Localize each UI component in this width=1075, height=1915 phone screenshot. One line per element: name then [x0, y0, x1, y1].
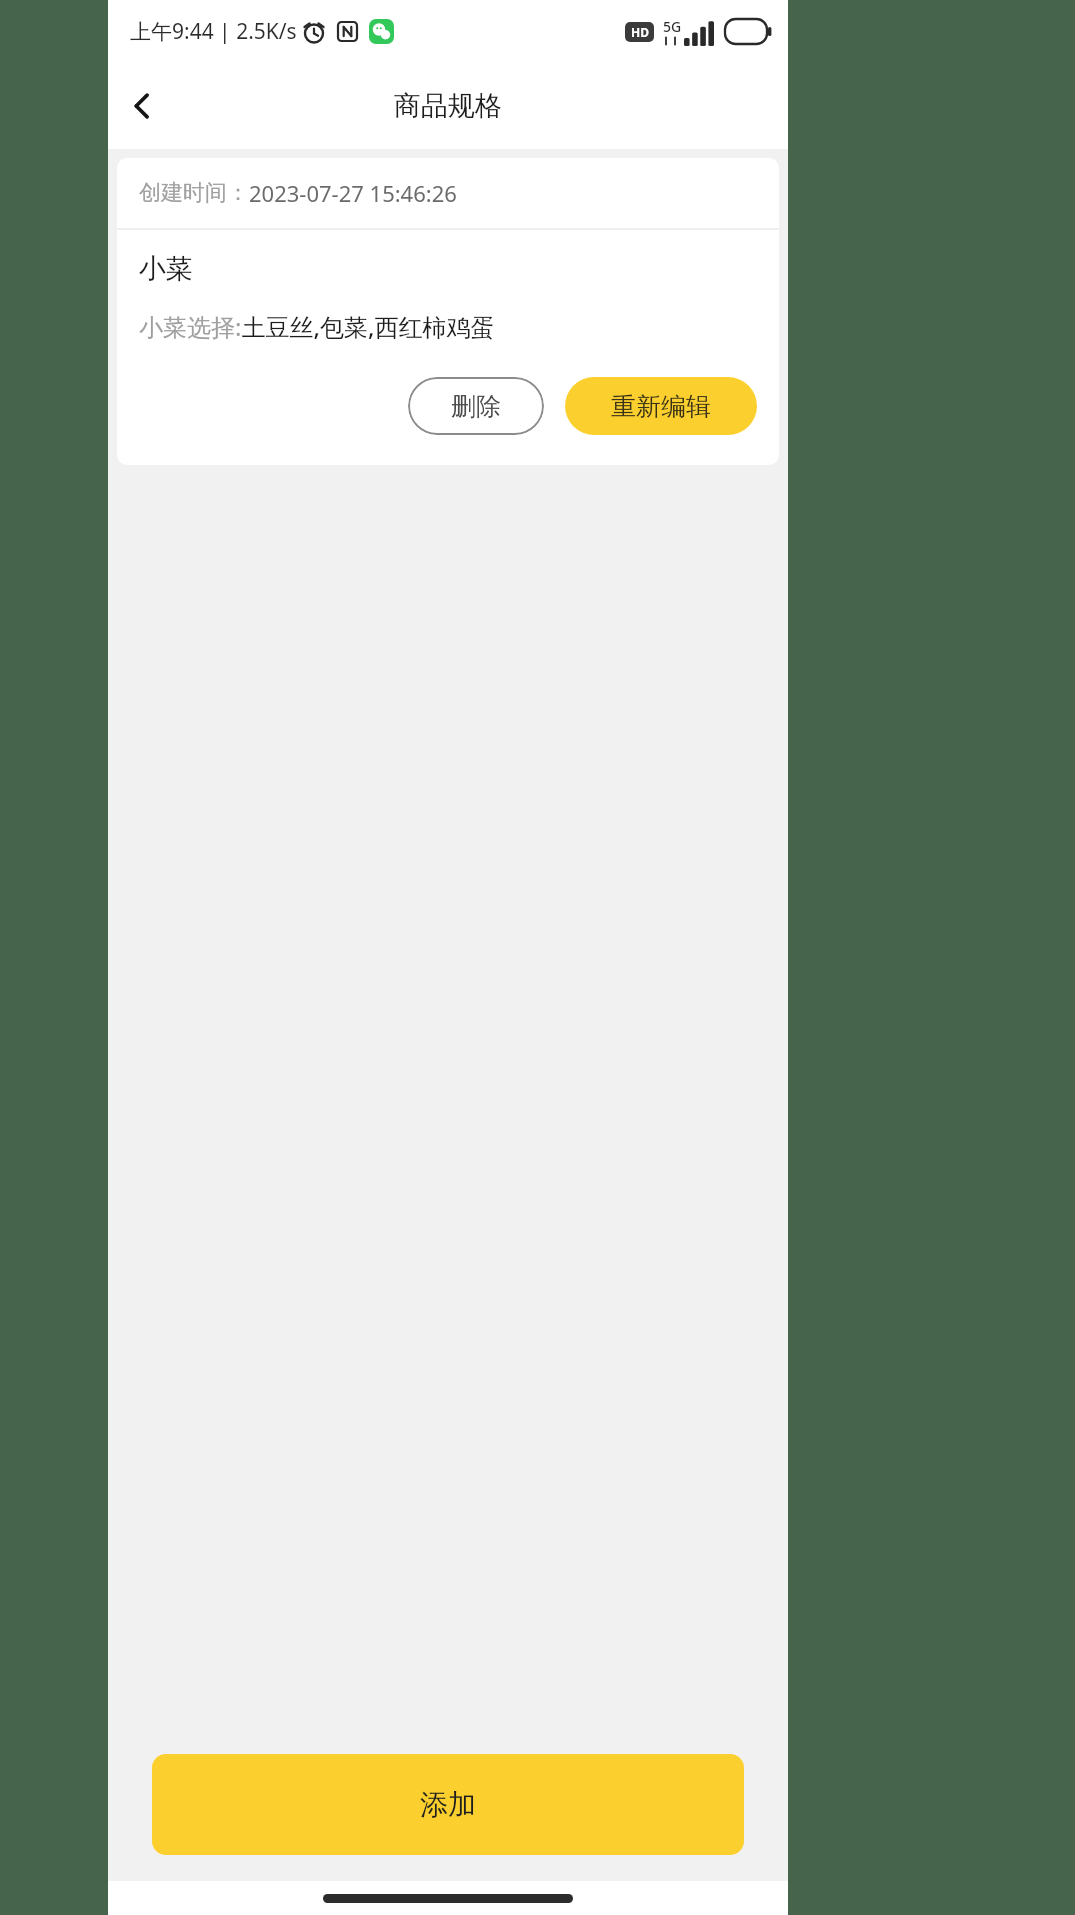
button[interactable]: 删除	[408, 377, 544, 435]
staticText: 小菜	[139, 252, 193, 286]
staticText: 创建时间：	[139, 179, 249, 207]
staticText: 重新编辑	[611, 391, 711, 422]
staticText: 5G	[663, 17, 682, 36]
staticText: 添加	[420, 1787, 476, 1822]
staticText: 商品规格	[394, 89, 502, 123]
staticText: HD	[631, 24, 649, 40]
staticText: 小菜选择:土豆丝,包菜,西红柿鸡蛋	[139, 310, 495, 343]
button[interactable]: 添加	[152, 1754, 744, 1855]
button[interactable]: Back	[108, 72, 176, 140]
button[interactable]: 重新编辑	[565, 377, 757, 435]
staticText: 2023-07-27 15:46:26	[249, 178, 457, 208]
staticText: 上午9:44 | 2.5K/s	[130, 17, 297, 46]
staticText: 删除	[451, 391, 501, 422]
